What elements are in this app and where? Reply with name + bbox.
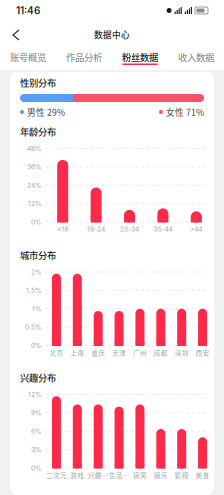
staticText: 西安 <box>196 348 210 357</box>
staticText: 48% <box>27 144 42 153</box>
staticText: 1% <box>32 305 42 313</box>
staticText: 生活… <box>109 470 129 480</box>
staticText: 0% <box>31 341 42 350</box>
staticText: >44 <box>190 225 202 233</box>
staticText: 北京 <box>49 348 63 357</box>
staticText: 重庆 <box>91 348 105 357</box>
staticText: 兴趣分布 <box>20 371 56 384</box>
staticText: 二次元 <box>46 470 67 480</box>
staticText: 广州 <box>133 348 147 357</box>
staticText: 年龄分布 <box>20 125 56 138</box>
staticText: 天津 <box>112 348 126 357</box>
staticText: 成都 <box>154 348 168 357</box>
staticText: 12% <box>28 200 42 208</box>
staticText: 6% <box>31 427 42 435</box>
staticText: 深圳 <box>175 348 189 357</box>
staticText: 娱乐 <box>154 470 168 480</box>
staticText: 2% <box>31 268 42 276</box>
staticText: 美食 <box>196 470 210 480</box>
staticText: 0% <box>31 218 42 226</box>
staticText: 11:46 <box>16 4 40 17</box>
staticText: 作品分析 <box>66 50 102 64</box>
button[interactable]: Back <box>0 21 32 48</box>
staticText: 12% <box>28 390 42 399</box>
staticText: 0% <box>31 464 42 472</box>
staticText: 男性 29% <box>27 106 65 118</box>
staticText: 账号概览 <box>10 50 46 64</box>
staticText: 9% <box>31 409 42 417</box>
staticText: 搞笑 <box>133 470 147 480</box>
staticText: 女性 71% <box>166 106 204 118</box>
staticText: 0.5% <box>25 323 42 331</box>
button[interactable]: 收入数据 <box>168 48 224 70</box>
staticText: <18 <box>57 225 68 233</box>
staticText: 25-34 <box>120 225 139 233</box>
staticText: 数据中心 <box>94 28 130 41</box>
button[interactable]: 账号概览 <box>0 48 56 70</box>
staticText: 游戏 <box>70 470 84 480</box>
button[interactable]: 粉丝数据 <box>112 48 168 70</box>
staticText: 兴趣… <box>88 470 109 480</box>
staticText: 3% <box>31 446 42 454</box>
staticText: 上海 <box>70 348 84 357</box>
button[interactable]: 作品分析 <box>56 48 112 70</box>
staticText: 35-44 <box>153 225 172 233</box>
staticText: 城市分布 <box>20 248 56 262</box>
staticText: 18-24 <box>87 225 105 233</box>
staticText: 影视 <box>175 470 189 480</box>
staticText: 性别分布 <box>20 76 56 89</box>
staticText: 36% <box>27 163 42 171</box>
staticText: 收入数据 <box>178 50 214 64</box>
staticText: 1.5% <box>26 286 42 294</box>
staticText: 粉丝数据 <box>122 50 158 64</box>
staticText: 24% <box>27 181 42 189</box>
